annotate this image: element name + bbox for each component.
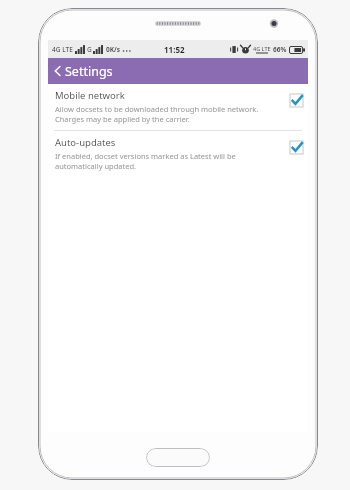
staticText: Mobile network xyxy=(55,89,125,102)
staticText: 4G LTE xyxy=(253,45,271,52)
button[interactable]: Navigate up xyxy=(48,58,115,84)
staticText: Auto-updates xyxy=(55,136,116,149)
staticText: 66% xyxy=(273,45,287,54)
button[interactable]: Mobile network xyxy=(48,84,308,130)
staticText: 4G LTE xyxy=(52,45,73,54)
staticText: Settings xyxy=(65,63,113,80)
button[interactable]: Auto-updates toggle xyxy=(290,141,303,154)
staticText: G xyxy=(87,45,92,54)
staticText: Allow docsets to be downloaded through m… xyxy=(55,104,259,124)
button[interactable]: Home xyxy=(146,448,210,467)
staticText: 0K/s xyxy=(106,45,120,54)
button[interactable]: Mobile network toggle xyxy=(290,94,303,107)
staticText: 11:52 xyxy=(164,44,185,55)
staticText: If enabled, docset versions marked as La… xyxy=(55,151,236,171)
button[interactable]: Auto-updates xyxy=(48,131,308,177)
